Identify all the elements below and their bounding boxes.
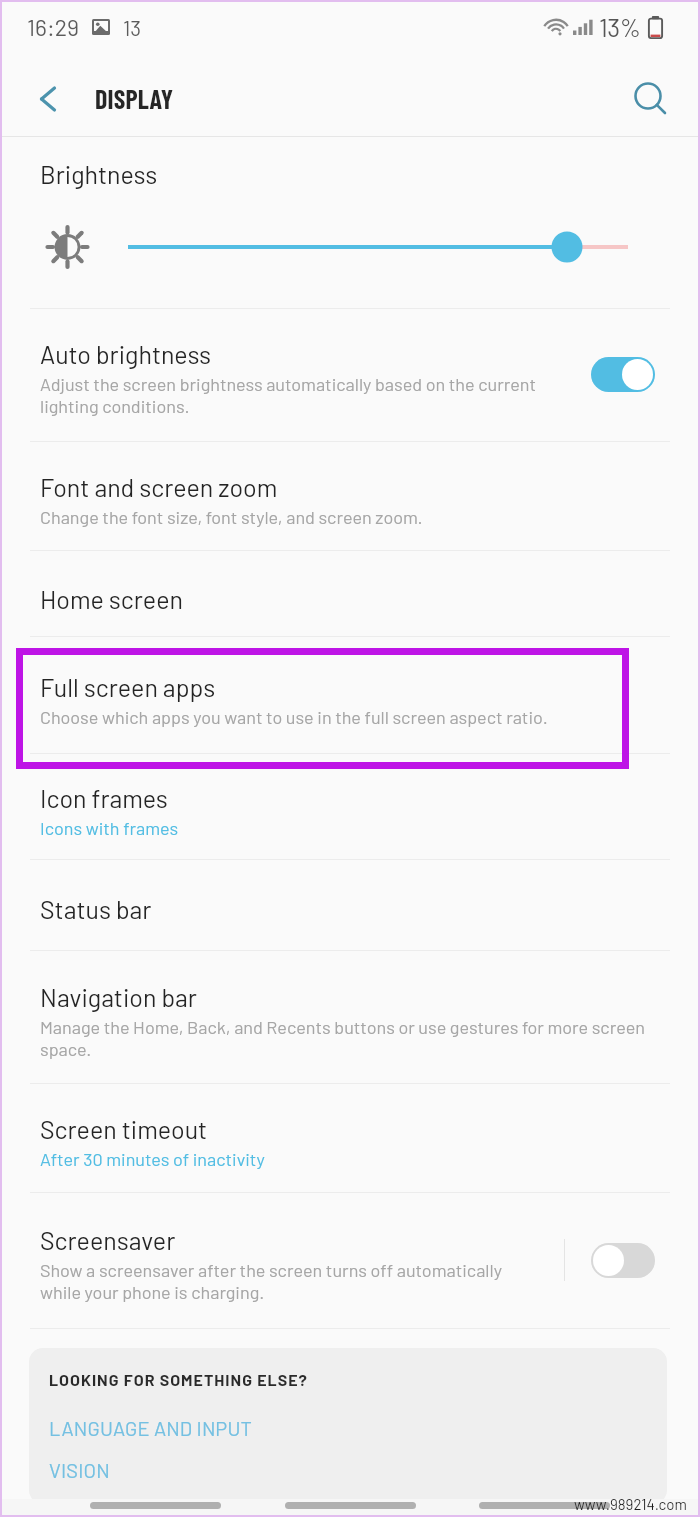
button[interactable]: Navigation bar — [0, 951, 700, 1083]
staticText: Icons with frames — [40, 817, 179, 839]
button[interactable]: Search — [626, 75, 674, 123]
button[interactable]: Icon frames — [0, 754, 700, 859]
staticText: Brightness — [40, 159, 158, 189]
button[interactable]: Font and screen zoom — [0, 442, 700, 550]
staticText: Status bar — [40, 894, 152, 924]
staticText: Icon frames — [40, 783, 168, 813]
staticText: Screen timeout — [40, 1114, 208, 1144]
staticText: LOOKING FOR SOMETHING ELSE? — [49, 1370, 308, 1389]
staticText: After 30 minutes of inactivity — [40, 1148, 265, 1170]
button[interactable]: Screensaver — [0, 1193, 700, 1328]
button[interactable]: Navigation button — [90, 1502, 221, 1509]
button[interactable]: Navigation button — [285, 1502, 416, 1509]
button[interactable]: VISION — [49, 1458, 110, 1482]
staticText: Navigation bar — [40, 982, 197, 1012]
button[interactable]: Home screen — [0, 551, 700, 636]
staticText: Change the font size, font style, and sc… — [40, 506, 423, 528]
staticText: 13 — [123, 15, 142, 40]
staticText: 16:29 — [27, 13, 80, 41]
button[interactable]: Status bar — [0, 860, 700, 950]
staticText: Full screen apps — [40, 672, 216, 702]
staticText: Screensaver — [40, 1225, 176, 1255]
button[interactable]: Screen timeout — [0, 1084, 700, 1192]
staticText: Manage the Home, Back, and Recents butto… — [40, 1016, 660, 1060]
button[interactable]: Back — [22, 75, 70, 123]
staticText: 13% — [599, 12, 641, 42]
button[interactable]: Full screen apps — [0, 637, 700, 753]
staticText: Home screen — [40, 584, 183, 614]
staticText: Choose which apps you want to use in the… — [40, 706, 548, 728]
button[interactable]: LANGUAGE AND INPUT — [49, 1416, 253, 1440]
button[interactable]: Auto brightness — [0, 309, 700, 441]
button[interactable]: Screensaver — [591, 1243, 655, 1278]
button[interactable]: Auto brightness — [591, 357, 655, 392]
staticText: Adjust the screen brightness automatical… — [40, 373, 540, 417]
staticText: Show a screensaver after the screen turn… — [40, 1259, 520, 1303]
staticText: Font and screen zoom — [40, 472, 278, 502]
staticText: Auto brightness — [40, 339, 212, 369]
button[interactable]: Navigation button — [479, 1502, 610, 1509]
staticText: DISPLAY — [95, 83, 174, 114]
staticText: www.989214.com — [574, 1495, 687, 1513]
